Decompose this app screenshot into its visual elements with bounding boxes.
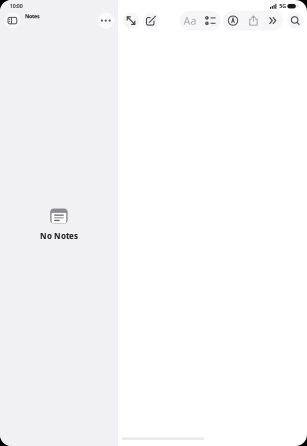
button[interactable]: Checklist — [200, 11, 220, 31]
staticText: 10:00 — [10, 2, 23, 9]
button[interactable]: Share — [243, 11, 263, 31]
staticText: 5G — [279, 2, 286, 10]
button[interactable]: Aa — [180, 11, 200, 31]
button[interactable]: More — [98, 12, 114, 29]
staticText: Aa — [183, 13, 196, 28]
staticText: No Notes — [40, 231, 78, 241]
button[interactable]: Expand — [123, 12, 139, 29]
button[interactable]: Markup — [223, 11, 243, 31]
button[interactable]: Notes — [23, 10, 42, 22]
button[interactable]: Search — [287, 12, 303, 29]
button[interactable]: Toggle Sidebar — [4, 12, 20, 29]
button[interactable]: New Note — [143, 12, 159, 29]
staticText: Notes — [25, 13, 40, 20]
button[interactable]: Show More — [263, 11, 283, 31]
